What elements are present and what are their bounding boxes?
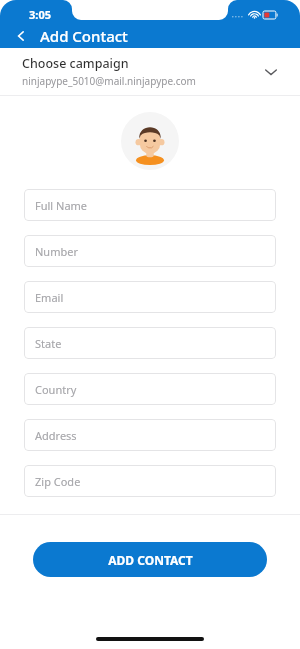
staticText: ADD CONTACT (108, 552, 193, 568)
button[interactable]: Full Name (24, 189, 276, 221)
button[interactable]: Number (24, 235, 276, 267)
staticText: 3:05 (29, 7, 51, 22)
button[interactable]: State (24, 327, 276, 359)
button[interactable]: Choose campaign (0, 48, 300, 95)
staticText: ninjapype_5010@mail.ninjapype.com (22, 74, 196, 88)
staticText: Number (35, 244, 78, 259)
button[interactable]: Country (24, 373, 276, 405)
staticText: Choose campaign (22, 55, 129, 72)
staticText: State (35, 336, 62, 351)
staticText: Country (35, 382, 77, 397)
button[interactable]: Back (10, 25, 32, 47)
staticText: Email (35, 290, 64, 305)
staticText: Full Name (35, 198, 88, 213)
staticText: Zip Code (35, 474, 81, 489)
button[interactable]: Zip Code (24, 465, 276, 497)
button[interactable]: Email (24, 281, 276, 313)
staticText: Add Contact (40, 26, 128, 46)
button[interactable]: ADD CONTACT (33, 542, 267, 577)
button[interactable]: Contact photo (121, 112, 179, 170)
staticText: Address (35, 428, 77, 443)
button[interactable]: Address (24, 419, 276, 451)
